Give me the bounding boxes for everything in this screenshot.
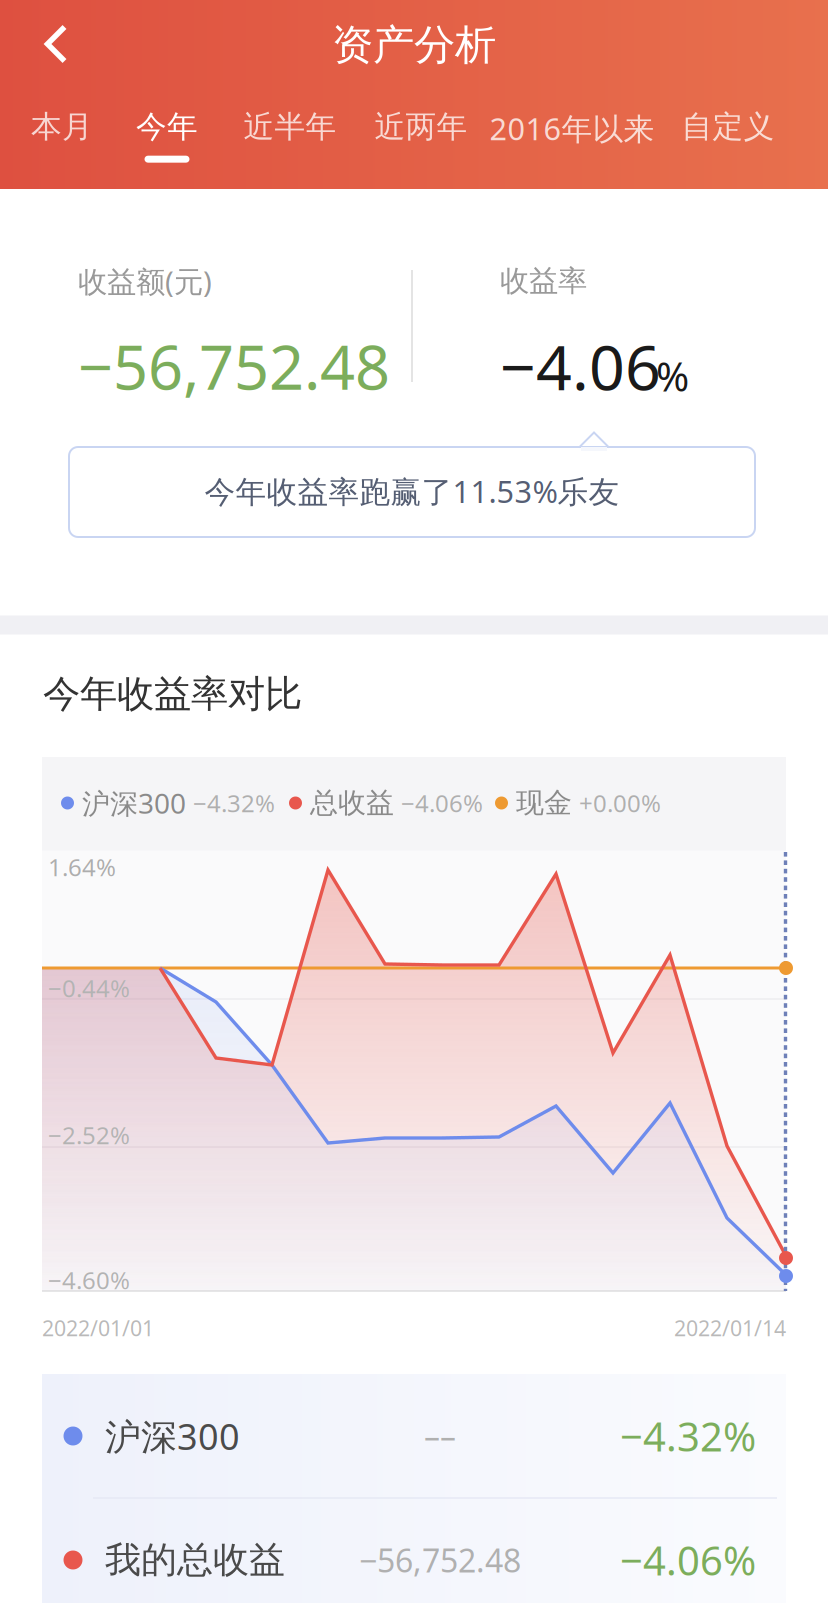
button[interactable]: Back [4, 1, 108, 87]
staticText: 今年收益率对比 [43, 671, 302, 717]
button[interactable]: 近两年 [359, 92, 483, 188]
button[interactable]: 沪深300 [42, 1374, 786, 1498]
staticText: 沪深300 [105, 1412, 240, 1460]
button[interactable]: 2016年以来 [480, 92, 664, 188]
staticText: −4.06% [620, 1533, 756, 1586]
staticText: −4.06 [500, 324, 661, 408]
staticText: 1.64% [48, 851, 116, 883]
staticText: 2016年以来 [489, 108, 654, 149]
staticText: −4.60% [48, 1264, 130, 1296]
staticText: −4.32% [620, 1409, 756, 1462]
button[interactable]: 近半年 [228, 92, 352, 188]
staticText: % [656, 349, 689, 402]
staticText: 近半年 [243, 108, 336, 146]
staticText: –– [424, 1415, 456, 1457]
staticText: −56,752.48 [78, 325, 390, 407]
staticText: 2022/01/14 [674, 1314, 786, 1342]
staticText: 2022/01/01 [42, 1314, 154, 1342]
button[interactable]: 本月 [12, 92, 112, 188]
staticText: +0.00% [579, 787, 661, 819]
staticText: 总收益 [310, 786, 394, 820]
staticText: −2.52% [48, 1119, 130, 1151]
staticText: 收益额(元) [78, 261, 212, 300]
staticText: −56,752.48 [359, 1539, 521, 1581]
staticText: −0.44% [48, 972, 130, 1004]
staticText: 收益率 [500, 263, 587, 299]
staticText: 沪深300 [82, 784, 186, 822]
staticText: 自定义 [681, 108, 774, 146]
staticText: −4.32% [193, 787, 275, 819]
button[interactable]: 今年 [117, 92, 217, 188]
staticText: 今年 [136, 108, 198, 146]
staticText: −4.06% [401, 787, 483, 819]
staticText: 近两年 [374, 108, 467, 146]
staticText: 资产分析 [332, 20, 496, 70]
staticText: 今年收益率跑赢了11.53%乐友 [204, 471, 619, 511]
staticText: 我的总收益 [105, 1538, 285, 1582]
button[interactable]: 我的总收益 [42, 1498, 786, 1603]
button[interactable]: 自定义 [666, 92, 790, 188]
staticText: 本月 [31, 108, 93, 146]
staticText: 现金 [516, 786, 572, 820]
